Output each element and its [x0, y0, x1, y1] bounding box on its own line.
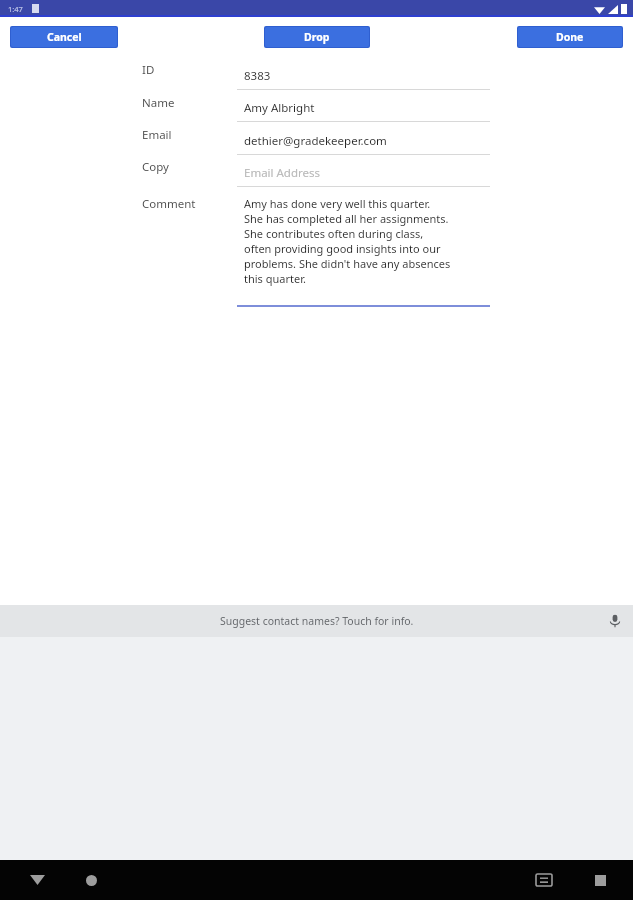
staticText: Cancel — [47, 30, 82, 44]
staticText: problems. She didn't have any absences — [244, 256, 451, 271]
button[interactable]: Drop — [265, 27, 369, 47]
staticText: Amy Albright — [244, 100, 315, 116]
staticText: dethier@gradekeeper.com — [244, 133, 387, 149]
button[interactable]: Back — [20, 863, 54, 897]
staticText: Amy has done very well this quarter. — [244, 196, 431, 211]
staticText: Suggest contact names? Touch for info. — [220, 614, 414, 628]
staticText: Comment — [142, 196, 196, 212]
staticText: this quarter. — [244, 271, 306, 286]
staticText: Drop — [304, 30, 330, 44]
staticText: 8383 — [244, 68, 271, 84]
staticText: 1:47 — [8, 4, 23, 14]
staticText: She has completed all her assignments. — [244, 211, 449, 226]
staticText: She contributes often during class, — [244, 226, 424, 241]
button[interactable]: Done — [518, 27, 622, 47]
button[interactable]: Recents — [583, 863, 617, 897]
staticText: ID — [142, 62, 155, 78]
button[interactable]: Suggest contact names? Touch for info. — [0, 605, 633, 637]
staticText: Done — [556, 30, 584, 44]
button[interactable]: dethier@gradekeeper.com — [237, 129, 490, 153]
button[interactable]: 8383 — [237, 64, 490, 88]
button[interactable]: Voice input — [605, 611, 625, 631]
button[interactable]: Home — [74, 863, 108, 897]
button[interactable]: Email Address — [237, 161, 490, 185]
staticText: Name — [142, 95, 175, 111]
button[interactable]: Keyboard — [527, 863, 561, 897]
button[interactable]: Amy Albright — [237, 96, 490, 120]
button[interactable]: Cancel — [11, 27, 117, 47]
staticText: Email — [142, 127, 172, 143]
staticText: often providing good insights into our — [244, 241, 441, 256]
staticText: Copy — [142, 159, 169, 175]
staticText: Email Address — [244, 165, 321, 181]
